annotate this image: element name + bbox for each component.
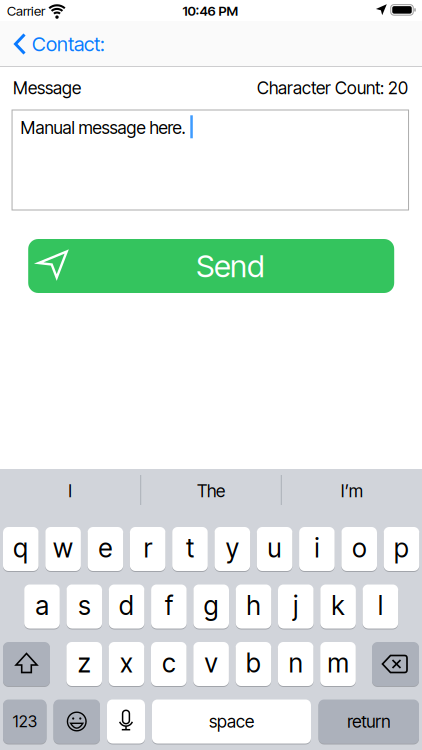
staticText: t xyxy=(186,532,194,564)
button[interactable]: I’m xyxy=(282,469,421,513)
button[interactable]: The xyxy=(141,469,280,513)
button[interactable] xyxy=(107,699,145,743)
staticText: h xyxy=(246,590,260,621)
button[interactable]: q xyxy=(3,527,39,571)
staticText: q xyxy=(13,532,28,564)
button[interactable]: j xyxy=(278,584,314,628)
button[interactable]: a xyxy=(24,584,60,628)
button[interactable]: v xyxy=(193,642,229,686)
button[interactable]: 123 xyxy=(3,699,46,743)
staticText: e xyxy=(98,532,112,564)
staticText: Manual message here. xyxy=(20,117,185,138)
staticText: Send xyxy=(196,247,264,284)
staticText: z xyxy=(78,647,91,679)
button[interactable]: h xyxy=(236,584,271,628)
button[interactable]: i xyxy=(299,527,335,571)
staticText: r xyxy=(144,532,152,564)
button[interactable]: Manual message here. xyxy=(12,110,409,210)
staticText: l xyxy=(378,590,383,621)
button[interactable]: d xyxy=(109,584,144,628)
staticText: m xyxy=(327,647,348,679)
staticText: u xyxy=(268,532,282,564)
staticText: x xyxy=(120,647,133,679)
button[interactable]: m xyxy=(320,642,356,686)
staticText: Character Count: 20 xyxy=(257,77,408,98)
staticText: The xyxy=(197,480,225,501)
button[interactable]: c xyxy=(151,642,187,686)
staticText: a xyxy=(35,590,48,621)
staticText: v xyxy=(205,647,218,679)
staticText: I’m xyxy=(341,480,363,501)
button[interactable]: n xyxy=(278,642,313,686)
button[interactable]: g xyxy=(193,584,229,628)
staticText: Contact: xyxy=(32,32,105,56)
staticText: y xyxy=(226,532,239,564)
button[interactable]: Send xyxy=(28,239,394,293)
button[interactable] xyxy=(3,642,50,686)
button[interactable]: l xyxy=(363,584,398,628)
staticText: b xyxy=(246,647,261,679)
staticText: w xyxy=(53,532,73,564)
button[interactable]: w xyxy=(45,527,81,571)
button[interactable]: x xyxy=(109,642,144,686)
button[interactable]: b xyxy=(236,642,271,686)
button[interactable] xyxy=(372,642,419,686)
button[interactable]: z xyxy=(66,642,102,686)
staticText: c xyxy=(162,647,175,679)
button[interactable]: t xyxy=(172,527,208,571)
button[interactable]: return xyxy=(318,699,419,743)
staticText: 10:46 PM xyxy=(182,3,238,19)
button[interactable]: y xyxy=(214,527,250,571)
button[interactable]: space xyxy=(152,699,311,743)
staticText: j xyxy=(293,590,298,621)
staticText: Message xyxy=(13,77,81,98)
staticText: g xyxy=(204,590,219,621)
staticText: o xyxy=(352,532,366,564)
button[interactable]: s xyxy=(66,584,102,628)
button[interactable]: I xyxy=(1,469,140,513)
staticText: return xyxy=(347,711,390,732)
staticText: 123 xyxy=(13,712,37,731)
button[interactable]: r xyxy=(130,527,165,571)
button[interactable]: u xyxy=(257,527,292,571)
staticText: i xyxy=(314,532,319,564)
staticText: d xyxy=(119,590,134,621)
button[interactable]: Contact: xyxy=(14,27,134,61)
button[interactable]: p xyxy=(384,527,419,571)
button[interactable]: o xyxy=(341,527,377,571)
button[interactable]: e xyxy=(88,527,123,571)
staticText: p xyxy=(394,532,409,564)
staticText: n xyxy=(289,647,303,679)
staticText: f xyxy=(165,590,173,621)
button[interactable] xyxy=(53,699,100,743)
staticText: k xyxy=(332,590,345,621)
staticText: space xyxy=(209,711,254,732)
staticText: s xyxy=(78,590,90,621)
button[interactable]: f xyxy=(151,584,187,628)
button[interactable]: k xyxy=(320,584,356,628)
staticText: I xyxy=(68,480,72,501)
staticText: Carrier xyxy=(7,3,45,19)
